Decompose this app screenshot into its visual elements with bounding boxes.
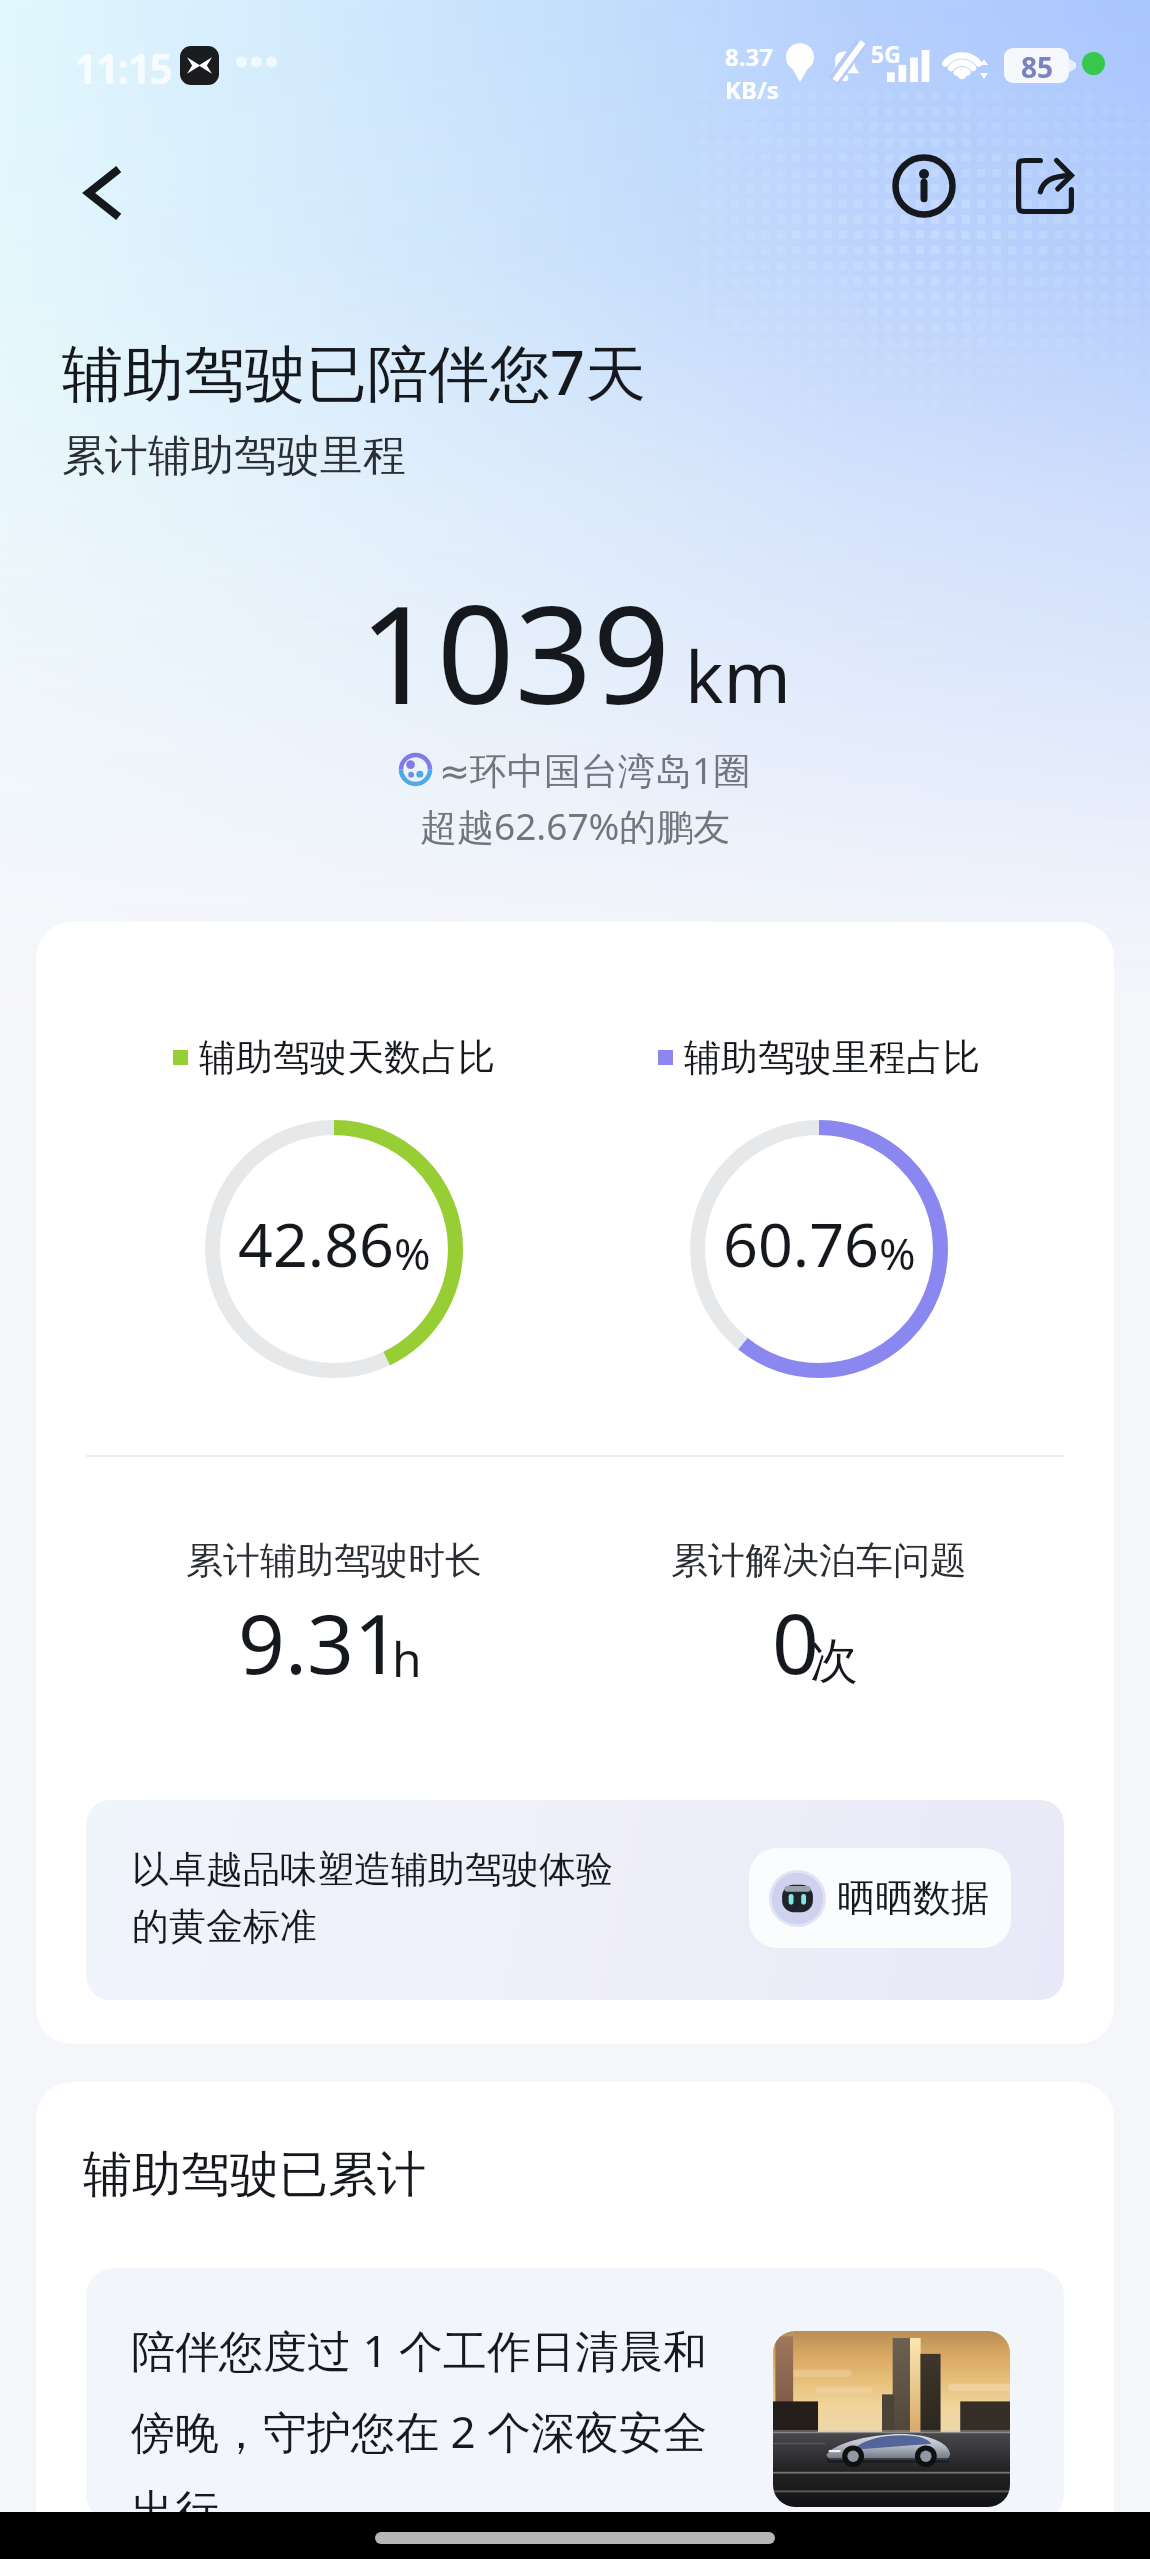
staticText: 累计解决泊车问题	[671, 1537, 967, 1584]
staticText: ≈环中国台湾岛1圈	[439, 744, 751, 795]
staticText: 辅助驾驶天数占比	[199, 1034, 495, 1081]
staticText: 1039	[359, 559, 671, 744]
staticText: 5G	[871, 38, 901, 69]
staticText: 11:15	[74, 40, 172, 96]
staticText: 8.37	[725, 40, 773, 73]
staticText: 60.76	[723, 1202, 879, 1285]
staticText: 辅助驾驶已累计	[83, 2144, 426, 2206]
staticText: %	[394, 1223, 431, 1283]
staticText: 累计辅助驾驶里程	[62, 429, 406, 483]
staticText: 0	[772, 1586, 819, 1698]
staticText: 超越62.67%的鹏友	[420, 800, 731, 851]
staticText: 辅助驾驶里程占比	[684, 1034, 980, 1081]
staticText: h	[392, 1626, 422, 1691]
staticText: 42.86	[238, 1202, 394, 1285]
button[interactable]: Back	[58, 151, 142, 235]
staticText: 次	[810, 1631, 858, 1691]
staticText: %	[879, 1223, 916, 1283]
staticText: 辅助驾驶已陪伴您7天	[62, 330, 646, 413]
staticText: 累计辅助驾驶时长	[186, 1537, 482, 1584]
staticText: KB/s	[725, 73, 779, 106]
staticText: 以卓越品味塑造辅助驾驶体验 的黄金标准	[132, 1846, 613, 1950]
staticText: 晒晒数据	[837, 1874, 989, 1922]
staticText: 9.31	[238, 1586, 401, 1698]
staticText: km	[685, 626, 791, 724]
staticText: 陪伴您度过 1 个工作日清晨和 傍晚，守护您在 2 个深夜安全 出行	[131, 2320, 708, 2522]
button[interactable]: Information	[882, 144, 966, 228]
staticText: 85	[1021, 48, 1054, 86]
button[interactable]: Share	[1003, 144, 1087, 228]
button[interactable]: 晒晒数据	[749, 1848, 1011, 1948]
